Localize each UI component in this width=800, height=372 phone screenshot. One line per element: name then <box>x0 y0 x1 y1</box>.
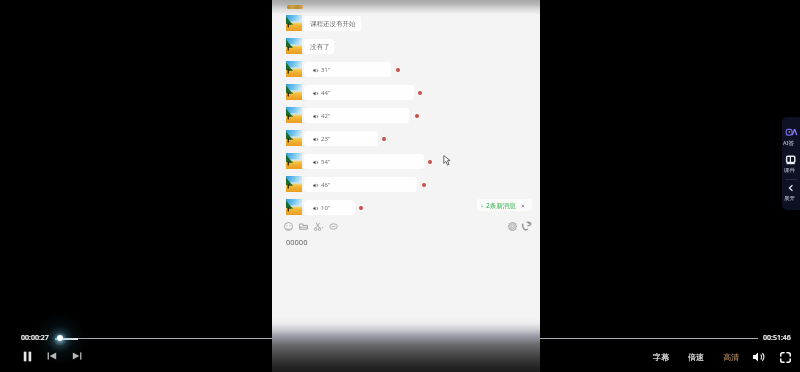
button[interactable]: Previous <box>44 348 60 364</box>
button[interactable]: Screenshot <box>311 219 325 233</box>
staticText: 44" <box>321 89 331 97</box>
button[interactable]: Next <box>69 348 85 364</box>
button[interactable]: 课程还没有开始 <box>304 16 361 31</box>
staticText: 高清 <box>723 352 739 362</box>
button[interactable]: 高清 <box>723 349 739 365</box>
button[interactable]: 倍速 <box>688 349 704 365</box>
staticText: AI答 <box>783 139 794 147</box>
staticText: 00000 <box>286 237 308 247</box>
button[interactable]: 54" <box>304 154 424 169</box>
staticText: 没有了 <box>310 43 330 51</box>
button[interactable]: Seek <box>57 335 63 341</box>
staticText: 课件 <box>784 167 795 174</box>
button[interactable]: Volume <box>750 349 766 365</box>
button[interactable]: Courseware <box>782 153 800 177</box>
button[interactable]: 没有了 <box>304 39 334 54</box>
button[interactable]: 44" <box>304 85 414 100</box>
button[interactable]: 31" <box>304 62 391 77</box>
staticText: 46" <box>321 181 331 189</box>
button[interactable]: Files <box>296 219 310 233</box>
button[interactable]: Pause <box>19 348 35 364</box>
button[interactable]: AI answer <box>782 125 800 149</box>
staticText: 课程还没有开始 <box>310 20 356 28</box>
staticText: 倍速 <box>688 352 704 362</box>
staticText: 00:51:46 <box>763 333 791 343</box>
staticText: 展开 <box>784 195 795 202</box>
button[interactable]: 10" <box>304 200 355 215</box>
button[interactable]: Expand <box>782 182 800 206</box>
staticText: 字幕 <box>653 352 669 362</box>
staticText: 10" <box>321 204 331 212</box>
staticText: 00:00:27 <box>21 333 49 343</box>
button[interactable]: Emoji <box>281 219 295 233</box>
button[interactable]: 42" <box>304 108 409 123</box>
button[interactable]: Fullscreen <box>777 349 793 365</box>
button[interactable]: 字幕 <box>653 349 669 365</box>
button[interactable]: 46" <box>304 177 417 192</box>
button[interactable]: More <box>326 219 340 233</box>
button[interactable]: Call <box>520 219 534 233</box>
staticText: 54" <box>321 158 331 166</box>
staticText: 31" <box>321 66 331 74</box>
staticText: 23" <box>321 135 331 143</box>
staticText: 42" <box>321 112 331 120</box>
button[interactable]: 2条新消息 <box>477 199 532 211</box>
button[interactable]: Settings <box>505 219 519 233</box>
button[interactable]: 23" <box>304 131 378 146</box>
staticText: 2条新消息 <box>486 201 516 210</box>
